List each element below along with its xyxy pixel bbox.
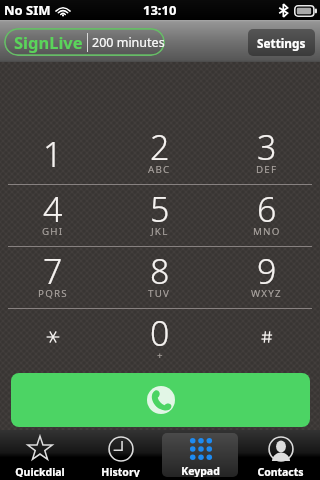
staticText: PQRS — [38, 287, 68, 300]
staticText: WXYZ — [251, 287, 282, 300]
button[interactable]: 2 — [106, 123, 213, 184]
button[interactable]: SignLive — [4, 28, 165, 56]
button[interactable]: 6 — [213, 185, 320, 246]
button[interactable]: 4 — [0, 185, 106, 246]
staticText: + — [157, 349, 164, 362]
button[interactable]: Call — [11, 373, 310, 427]
button[interactable]: 3 — [213, 123, 320, 184]
staticText: 13:10 — [143, 1, 177, 19]
staticText: History — [101, 465, 140, 477]
button[interactable] — [0, 309, 106, 370]
staticText: JKL — [151, 225, 169, 238]
staticText: 8 — [150, 248, 170, 294]
staticText: 7 — [43, 248, 63, 294]
button[interactable]: 7 — [0, 247, 106, 308]
button[interactable]: 8 — [106, 247, 213, 308]
button[interactable]: Quickdial — [2, 433, 78, 477]
button[interactable]: 9 — [213, 247, 320, 308]
staticText: MNO — [253, 225, 281, 238]
staticText: 9 — [257, 248, 277, 294]
button[interactable]: Contacts — [242, 433, 318, 477]
button[interactable]: 5 — [106, 185, 213, 246]
staticText: GHI — [42, 225, 64, 238]
staticText: Quickdial — [15, 465, 65, 477]
staticText: 2 — [150, 124, 170, 170]
button[interactable]: History — [82, 433, 158, 477]
staticText: TUV — [148, 287, 171, 300]
staticText: 5 — [150, 186, 170, 232]
staticText: 0 — [150, 310, 170, 356]
staticText: 200 minutes — [92, 34, 165, 51]
staticText: 6 — [257, 186, 277, 232]
button[interactable] — [213, 309, 320, 370]
button[interactable]: Settings — [248, 29, 315, 56]
button[interactable]: Keypad — [162, 433, 238, 477]
staticText: SignLive — [14, 31, 83, 53]
staticText: 3 — [257, 124, 277, 170]
staticText: 1 — [43, 131, 63, 177]
staticText: ABC — [148, 163, 171, 176]
staticText: 4 — [43, 186, 63, 232]
staticText: DEF — [256, 163, 278, 176]
button[interactable]: 0 — [106, 309, 213, 370]
staticText: No SIM — [4, 1, 51, 19]
staticText: Settings — [257, 35, 306, 51]
staticText: Contacts — [257, 465, 304, 477]
button[interactable]: 1 — [0, 123, 106, 184]
staticText: Keypad — [181, 464, 220, 477]
